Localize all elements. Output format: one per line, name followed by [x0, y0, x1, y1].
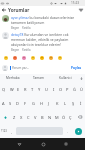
staticText: Ö [62, 115, 66, 120]
staticText: X [20, 115, 23, 120]
staticText: Kullanici [59, 76, 72, 80]
staticText: detay78 Kurulumdan ve icerikten cok memn… [11, 32, 83, 47]
button[interactable]: Back [14, 139, 24, 149]
button[interactable]: W [8, 82, 15, 96]
staticText: İ [80, 101, 82, 106]
button[interactable]: Ş [69, 96, 77, 110]
button[interactable]: Ç [67, 110, 74, 124]
button[interactable]: T [29, 82, 36, 96]
staticText: Q [2, 87, 6, 92]
button[interactable]: Z [11, 110, 18, 124]
button[interactable]: P [64, 82, 71, 96]
button[interactable]: Shift [0, 110, 11, 124]
button[interactable]: H [37, 96, 45, 110]
staticText: Ü [80, 87, 83, 92]
button[interactable]: C [25, 110, 32, 124]
staticText: Yanitla [22, 26, 31, 30]
staticText: Ç [69, 115, 72, 120]
staticText: Ş [72, 101, 75, 106]
staticText: B [41, 115, 44, 120]
button[interactable]: X [18, 110, 25, 124]
button[interactable]: M [53, 110, 60, 124]
staticText: K [56, 101, 59, 106]
staticText: S [9, 101, 12, 106]
staticText: Begen [11, 48, 20, 52]
staticText: H [40, 101, 43, 106]
button[interactable]: U [43, 82, 50, 96]
button[interactable]: A [0, 96, 7, 110]
button[interactable]: Reaction 6 [46, 54, 55, 62]
button[interactable]: I [50, 82, 57, 96]
button[interactable]: Ö [60, 110, 67, 124]
staticText: C [27, 115, 30, 120]
button[interactable]: Reaction 3 [19, 54, 28, 62]
staticText: W [10, 87, 14, 92]
button[interactable]: D [14, 96, 21, 110]
button[interactable]: Home [38, 139, 48, 149]
button[interactable]: Ü [78, 82, 85, 96]
staticText: ayse.yilmaz bu konudaki dusuncelerinize … [11, 15, 83, 25]
button[interactable]: S [7, 96, 14, 110]
button[interactable]: L [61, 96, 69, 110]
staticText: Merhaba [6, 76, 20, 80]
button[interactable]: Tamam [26, 74, 52, 82]
button[interactable]: Reaction 7 [55, 54, 64, 62]
staticText: 15:23 [71, 1, 80, 5]
button[interactable]: Reaction 4 [28, 54, 37, 62]
button[interactable]: Reaction 5 [37, 54, 46, 62]
staticText: , [11, 129, 12, 134]
button[interactable]: F [21, 96, 29, 110]
staticText: U [45, 87, 48, 92]
button[interactable]: V [32, 110, 39, 124]
button[interactable]: Kullanici [52, 74, 78, 82]
staticText: L [64, 101, 67, 106]
button[interactable]: N [46, 110, 53, 124]
staticText: E [17, 87, 20, 92]
button[interactable]: Paylas [70, 62, 83, 74]
staticText: Ğ [73, 87, 76, 92]
button[interactable]: Y [36, 82, 43, 96]
button[interactable]: O [57, 82, 64, 96]
button[interactable]: Reaction 2 [10, 54, 19, 62]
button[interactable]: Yorum yaz... [10, 62, 70, 74]
staticText: D [16, 101, 19, 106]
staticText: T [31, 87, 34, 92]
staticText: Begen [11, 26, 20, 30]
button[interactable]: G [29, 96, 37, 110]
staticText: Yanitla [22, 48, 31, 52]
staticText: . [67, 129, 68, 134]
button[interactable]: Merhaba [0, 74, 26, 82]
staticText: O [59, 87, 63, 92]
button[interactable]: Recent apps [61, 139, 71, 149]
staticText: J [48, 101, 50, 106]
button[interactable]: Sort comments [76, 6, 85, 13]
button[interactable]: Reaction 1 [1, 54, 10, 62]
button[interactable]: J [45, 96, 53, 110]
button[interactable]: ayse.yilmaz bu konudaki dusuncelerinize … [0, 15, 85, 30]
button[interactable]: B [39, 110, 46, 124]
button[interactable]: R [22, 82, 29, 96]
staticText: M [55, 115, 59, 120]
button[interactable]: Send [75, 128, 82, 135]
button[interactable]: E [15, 82, 22, 96]
staticText: N [48, 115, 52, 120]
button[interactable]: K [53, 96, 61, 110]
button[interactable]: detay78 Kurulumdan ve icerikten cok memn… [0, 32, 85, 52]
button[interactable]: Voice input [78, 74, 85, 82]
button[interactable]: Back [0, 6, 8, 13]
staticText: Paylas [71, 66, 82, 70]
button[interactable]: Backspace [74, 110, 85, 124]
staticText: Y [38, 87, 41, 92]
staticText: Tamam [33, 76, 45, 80]
button[interactable]: ?123 [0, 124, 8, 138]
button[interactable]: Q [0, 82, 8, 96]
staticText: P [66, 87, 69, 92]
staticText: I [53, 87, 55, 92]
button[interactable]: Ğ [71, 82, 78, 96]
staticText: Yorumlar [8, 7, 30, 13]
staticText: F [24, 101, 27, 106]
button[interactable]: , [8, 124, 15, 138]
button[interactable]: İ [77, 96, 85, 110]
